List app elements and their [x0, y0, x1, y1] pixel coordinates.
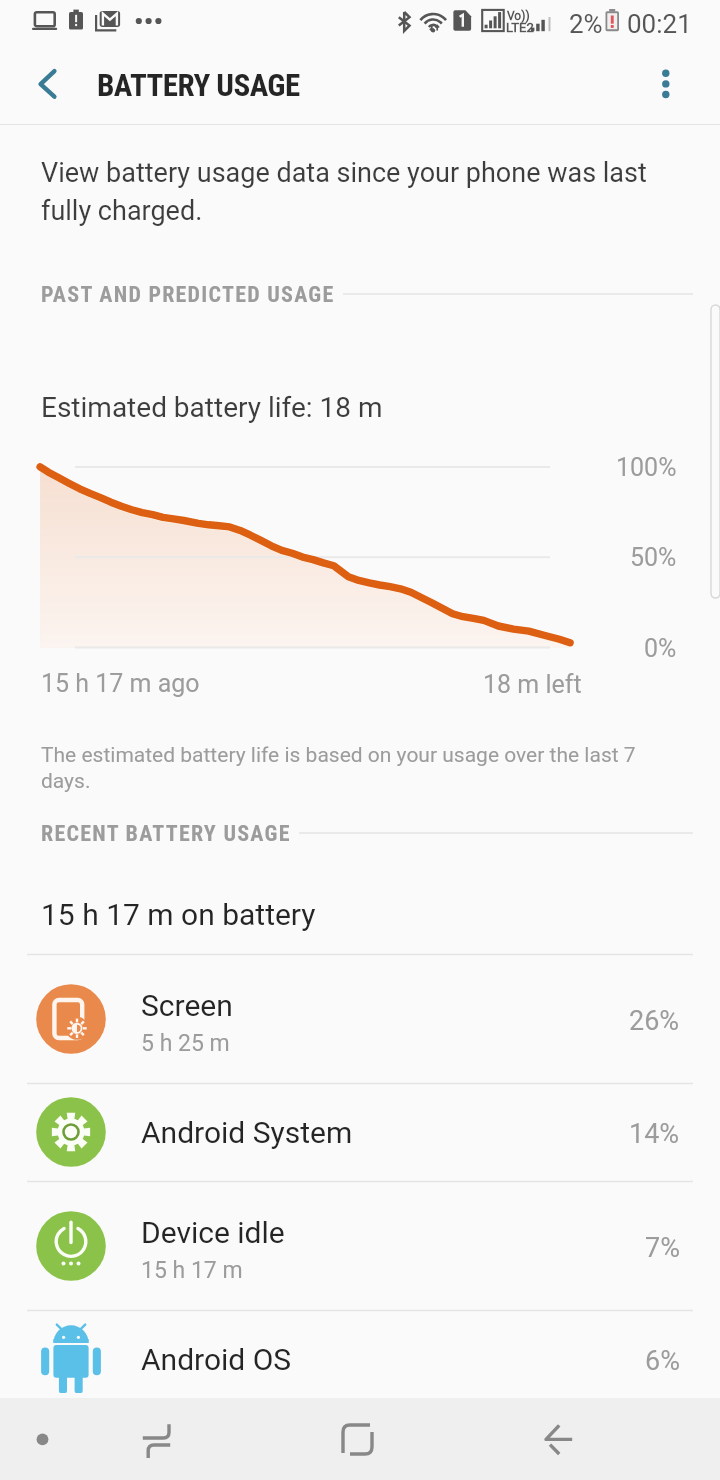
staticText: 2% — [569, 9, 603, 39]
button[interactable]: Android System — [0, 1083, 720, 1181]
staticText: 6% — [645, 1345, 680, 1377]
button[interactable]: Back — [458, 1398, 658, 1480]
staticText: The estimated battery life is based on y… — [41, 743, 666, 793]
button[interactable]: Navigation hint — [13, 1398, 73, 1480]
staticText: 18 m left — [483, 670, 582, 699]
staticText: Android System — [141, 1115, 353, 1150]
staticText: 15 h 17 m on battery — [41, 897, 316, 932]
staticText: 100% — [616, 453, 677, 482]
staticText: Device idle — [141, 1215, 285, 1250]
staticText: 14% — [629, 1118, 680, 1150]
staticText: 7% — [645, 1232, 680, 1264]
button[interactable]: Device idle — [0, 1181, 720, 1310]
staticText: BATTERY USAGE — [97, 67, 300, 103]
staticText: PAST AND PREDICTED USAGE — [41, 282, 335, 308]
staticText: Estimated battery life: 18 m — [41, 391, 383, 424]
staticText: View battery usage data since your phone… — [41, 157, 666, 227]
button[interactable]: Android OS — [0, 1310, 720, 1408]
staticText: 26% — [629, 1005, 680, 1037]
button[interactable]: Home — [257, 1398, 457, 1480]
staticText: 15 h 17 m ago — [41, 669, 200, 698]
button[interactable]: More options — [636, 52, 698, 124]
staticText: RECENT BATTERY USAGE — [41, 821, 291, 847]
staticText: Screen — [141, 988, 233, 1023]
staticText: 00:21 — [627, 9, 692, 39]
staticText: Vo)) — [507, 9, 530, 23]
button[interactable]: Navigate up — [12, 52, 70, 124]
button[interactable]: Screen — [0, 954, 720, 1083]
staticText: Android OS — [141, 1342, 292, 1377]
staticText: 0% — [644, 634, 677, 663]
staticText: 5 h 25 m — [141, 1030, 230, 1057]
staticText: 15 h 17 m — [141, 1257, 243, 1284]
button[interactable]: Recent apps — [56, 1398, 256, 1480]
staticText: 50% — [630, 543, 677, 572]
staticText: LTE2 — [506, 20, 534, 35]
